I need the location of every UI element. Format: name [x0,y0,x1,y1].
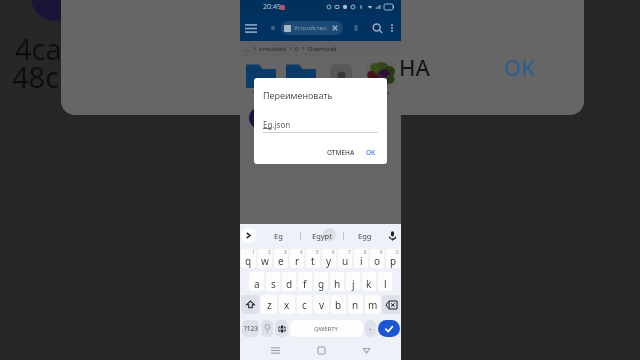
button[interactable]: QWERTY [290,320,363,337]
staticText: НА [399,52,430,82]
staticText: e [278,254,284,268]
staticText: Download [308,45,337,53]
button[interactable]: c [297,295,312,314]
staticText: Acc 4ca… 48c… [254,130,267,149]
staticText: w [261,254,269,268]
staticText: p [390,254,397,268]
button[interactable]: Emoji [261,320,273,337]
staticText: q [245,254,252,268]
button[interactable]: ?123 [242,320,259,337]
staticText: 8 [364,249,367,255]
button[interactable]: More suggestions [241,228,256,243]
button[interactable]: Enter [378,320,400,337]
staticText: 4ca [15,29,62,68]
button[interactable]: y [322,249,336,268]
button[interactable]: Switch language [275,320,288,337]
staticText: 0 [396,249,399,255]
button[interactable]: Egg [344,224,386,247]
staticText: QWERTY [314,325,339,333]
staticText: ?123 [244,324,258,333]
button[interactable]: b [331,295,346,314]
button[interactable]: t [306,249,320,268]
button[interactable]: Eg [257,224,300,247]
button[interactable]: Устройство [284,21,340,35]
staticText: u [342,254,349,268]
button[interactable]: Download [306,45,339,53]
staticText: 9 [380,249,383,255]
staticText: t [311,254,315,268]
button[interactable]: 0 [293,45,301,53]
button[interactable]: Home [311,340,331,360]
button[interactable]: Acc 4ca… 48c… [240,106,280,149]
staticText: . [369,321,372,332]
staticText: com.do p.json [252,89,270,102]
button[interactable]: d [282,272,296,291]
button[interactable]: app.apk [321,62,361,94]
staticText: 20:49 [263,2,281,12]
button[interactable]: o [370,249,384,268]
button[interactable]: j [346,272,360,291]
button[interactable]: u [338,249,352,268]
button[interactable]: Shift [241,295,259,314]
button[interactable]: Open navigation menu [242,19,260,37]
button[interactable]: Recent apps [265,340,285,360]
button[interactable]: q [241,249,256,268]
staticText: l [384,277,387,291]
button[interactable]: More options [384,20,400,36]
button[interactable]: n [348,295,363,314]
button[interactable]: Jakarta salad [361,62,401,102]
button[interactable]: f [298,272,312,291]
staticText: 5 [316,249,319,255]
staticText: Eg [274,231,283,241]
staticText: 7 [348,249,351,255]
staticText: a [254,277,260,291]
button[interactable]: . [365,320,376,337]
button[interactable]: a [249,272,264,291]
staticText: 4 [300,249,303,255]
staticText: 3 [284,249,287,255]
staticText: z [267,298,272,312]
button[interactable]: Android [281,62,321,96]
staticText: y [326,254,332,268]
button[interactable]: s [266,272,280,291]
staticText: f [303,277,307,291]
staticText: 0 [295,45,299,53]
staticText: x [284,298,290,312]
staticText: d [286,277,293,291]
button[interactable]: k [362,272,376,291]
staticText: Устройство [294,24,327,32]
button[interactable]: … [243,45,252,53]
staticText: Android [292,89,311,96]
button[interactable]: Search [368,19,386,37]
button[interactable]: emulated [257,45,288,53]
button[interactable]: l [378,272,392,291]
button[interactable]: Egypt [301,224,343,247]
button[interactable]: h [330,272,344,291]
staticText: emulated [259,45,286,53]
staticText: b [335,298,342,312]
button[interactable]: r [290,249,304,268]
staticText: s [271,277,276,291]
button[interactable]: p [386,249,400,268]
button[interactable]: Back [356,340,376,360]
button[interactable]: com.do p.json [240,62,281,102]
staticText: k [366,277,372,291]
staticText: Egg [358,231,372,241]
button[interactable]: z [261,295,277,314]
button[interactable]: e [274,249,288,268]
button[interactable]: w [258,249,272,268]
staticText: m [368,298,378,312]
staticText: OK [366,148,376,157]
button[interactable]: x [279,295,295,314]
button[interactable]: v [314,295,329,314]
button[interactable]: i [354,249,368,268]
button[interactable]: OK [362,145,380,160]
button[interactable]: Voice input [385,229,399,243]
button[interactable]: Backspace [382,295,400,314]
button[interactable]: g [314,272,328,291]
button[interactable]: m [365,295,380,314]
staticText: n [352,298,359,312]
button[interactable]: ОТМЕНА [323,145,359,160]
staticText: h [334,277,341,291]
